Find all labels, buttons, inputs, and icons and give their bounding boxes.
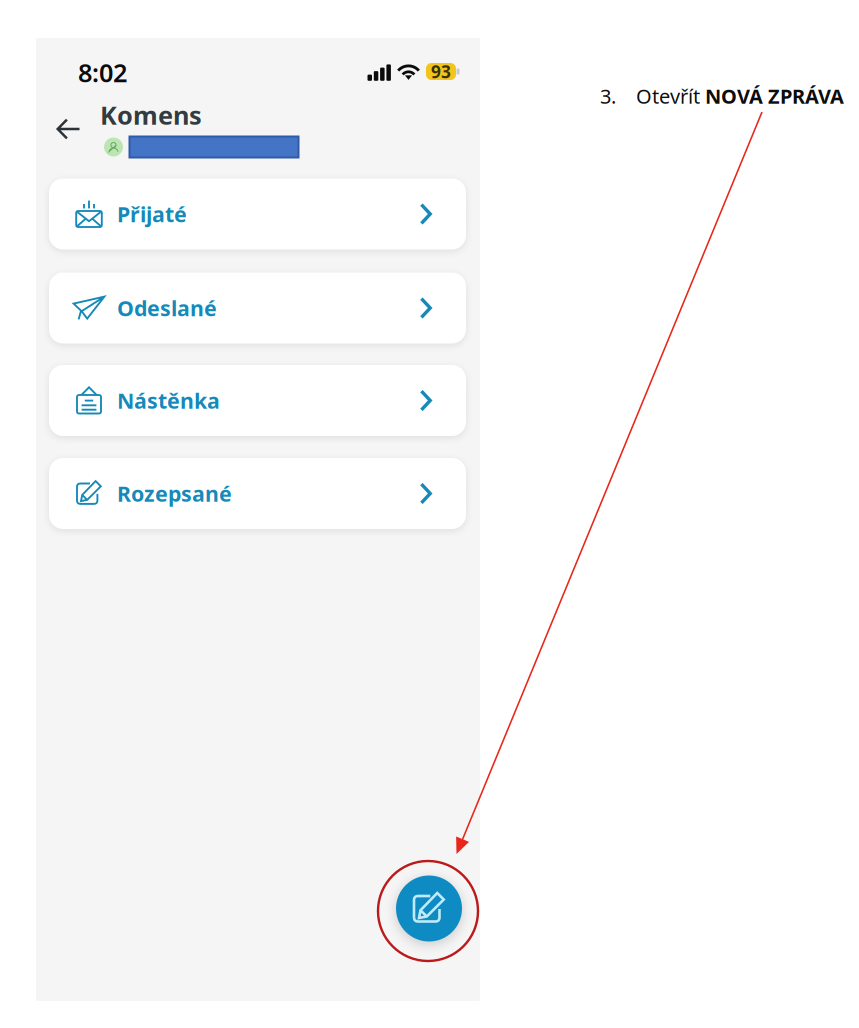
staticText: 93 (431, 60, 451, 83)
staticText: Rozepsané (117, 479, 232, 508)
button[interactable]: Přijaté (49, 178, 466, 249)
button[interactable]: New message (396, 875, 462, 941)
button[interactable]: Odeslané (49, 272, 466, 343)
button[interactable]: Nástěnka (49, 365, 466, 436)
button[interactable]: Rozepsané (49, 458, 466, 529)
staticText: Komens (100, 98, 202, 132)
staticText: 8:02 (78, 56, 127, 89)
staticText: Otevřít NOVÁ ZPRÁVA (636, 83, 844, 109)
button[interactable]: Back (46, 107, 90, 151)
staticText: 3. (600, 83, 616, 109)
staticText: Nástěnka (117, 386, 220, 415)
staticText: Odeslané (117, 294, 217, 322)
staticText: Přijaté (117, 200, 187, 228)
